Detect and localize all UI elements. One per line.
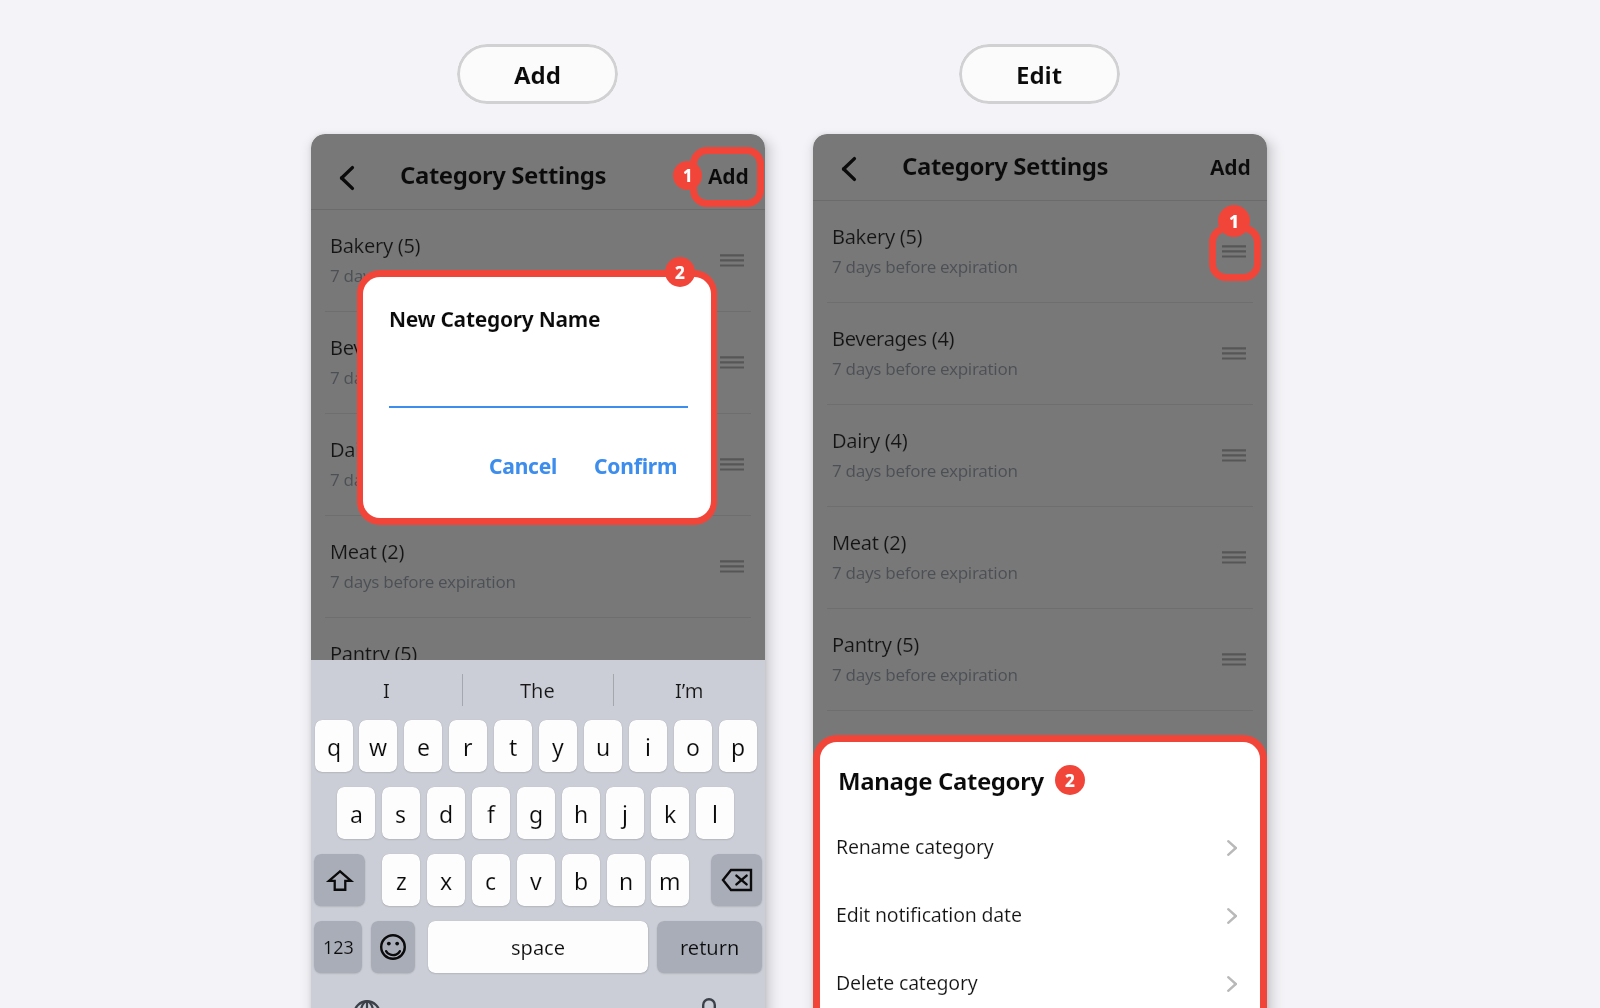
staticText: Cancel — [489, 452, 558, 481]
button[interactable]: k — [651, 787, 689, 839]
button[interactable]: Reorder Bakery (5) — [1210, 230, 1258, 274]
staticText: Bakery (5) — [832, 223, 923, 250]
button[interactable]: Reorder Beverages (4) — [708, 341, 756, 385]
button[interactable]: Edit notification date — [820, 888, 1260, 944]
staticText: p — [731, 731, 746, 762]
button[interactable]: Bakery (5) — [311, 210, 765, 312]
staticText: 7 days before expiration — [330, 264, 516, 287]
button[interactable]: Dictation — [702, 998, 716, 1008]
staticText: l — [712, 798, 718, 829]
button[interactable]: Pantry (5) — [311, 618, 765, 720]
staticText: u — [596, 731, 611, 762]
button[interactable]: b — [562, 854, 600, 906]
button[interactable]: Reorder Beverages (4) — [1210, 332, 1258, 376]
staticText: h — [574, 798, 589, 829]
button[interactable]: n — [607, 854, 645, 906]
button[interactable]: Cancel — [482, 446, 564, 486]
button[interactable]: t — [494, 720, 532, 772]
staticText: 7 days before expiration — [330, 468, 516, 491]
staticText: return — [680, 934, 740, 961]
button[interactable]: Emoji — [371, 921, 415, 973]
button[interactable]: Delete category — [820, 956, 1260, 1008]
button[interactable]: Meat (2) — [311, 516, 765, 618]
staticText: c — [485, 865, 497, 896]
button[interactable]: Beverages (4) — [813, 303, 1267, 405]
staticText: 7 days before expiration — [330, 366, 516, 389]
button[interactable]: u — [584, 720, 622, 772]
staticText: Category Settings — [400, 158, 607, 191]
button[interactable]: Bakery (5) — [813, 201, 1267, 303]
button[interactable]: Rename category — [820, 820, 1260, 876]
button[interactable]: Dairy (4) — [813, 405, 1267, 507]
button[interactable]: m — [651, 854, 689, 906]
button[interactable]: Add — [457, 44, 618, 104]
button[interactable]: I — [311, 668, 462, 712]
staticText: Pantry (5) — [330, 640, 417, 667]
button[interactable]: c — [472, 854, 510, 906]
button[interactable]: Reorder Dairy (4) — [708, 443, 756, 487]
staticText: The — [520, 677, 555, 704]
staticText: t — [509, 731, 518, 762]
button[interactable]: r — [449, 720, 487, 772]
button[interactable]: Edit — [959, 44, 1120, 104]
button[interactable]: Backspace — [711, 854, 762, 906]
button[interactable]: Reorder Pantry (5) — [708, 647, 756, 691]
staticText: a — [350, 798, 363, 829]
button[interactable]: Back — [828, 148, 870, 190]
button[interactable]: y — [539, 720, 577, 772]
staticText: 7 days before expiration — [832, 459, 1018, 482]
button[interactable]: Beverages (4) — [311, 312, 765, 414]
staticText: Edit notification date — [836, 901, 1022, 928]
button[interactable]: z — [382, 854, 420, 906]
button[interactable]: s — [382, 787, 420, 839]
button[interactable]: Change keyboard language — [353, 1000, 381, 1008]
button[interactable]: Dairy (4) — [311, 414, 765, 516]
button[interactable]: Add — [1204, 147, 1256, 187]
button[interactable]: g — [517, 787, 555, 839]
staticText: x — [440, 865, 453, 896]
button[interactable]: i — [629, 720, 667, 772]
staticText: I — [383, 677, 390, 704]
staticText: Dairy (4) — [330, 436, 406, 463]
button[interactable]: p — [719, 720, 757, 772]
button[interactable]: Reorder Pantry (5) — [1210, 638, 1258, 682]
button[interactable]: v — [517, 854, 555, 906]
button[interactable]: Reorder Meat (2) — [1210, 536, 1258, 580]
button[interactable]: Meat (2) — [813, 507, 1267, 609]
button[interactable]: Reorder Meat (2) — [708, 545, 756, 589]
button[interactable]: l — [696, 787, 734, 839]
button[interactable]: e — [404, 720, 442, 772]
button[interactable]: Shift — [314, 854, 365, 906]
button[interactable]: q — [315, 720, 353, 772]
button[interactable]: Reorder Bakery (5) — [708, 239, 756, 283]
button[interactable]: Back — [326, 157, 368, 199]
staticText: 2 — [1065, 769, 1075, 792]
button[interactable]: Add — [702, 156, 754, 196]
staticText: 1 — [683, 164, 693, 187]
button[interactable]: h — [562, 787, 600, 839]
button[interactable]: w — [359, 720, 397, 772]
staticText: 7 days before expiration — [330, 570, 516, 593]
button[interactable]: o — [674, 720, 712, 772]
button[interactable]: a — [337, 787, 375, 839]
button[interactable]: 123 — [314, 921, 362, 973]
staticText: New Category Name — [389, 305, 601, 334]
button[interactable]: j — [606, 787, 644, 839]
staticText: Meat (2) — [330, 538, 405, 565]
staticText: Add — [1210, 153, 1251, 182]
button[interactable]: d — [427, 787, 465, 839]
button[interactable]: f — [472, 787, 510, 839]
staticText: w — [369, 731, 388, 762]
staticText: I’m — [675, 677, 704, 704]
button[interactable]: x — [427, 854, 465, 906]
button[interactable]: I’m — [614, 668, 765, 712]
button[interactable]: Pantry (5) — [813, 609, 1267, 711]
staticText: 7 days before expiration — [832, 663, 1018, 686]
button[interactable]: space — [428, 921, 648, 973]
button[interactable]: Reorder Dairy (4) — [1210, 434, 1258, 478]
staticText: b — [574, 865, 589, 896]
button[interactable]: return — [657, 921, 762, 973]
staticText: s — [395, 798, 407, 829]
button[interactable]: Confirm — [591, 446, 681, 486]
button[interactable]: The — [462, 668, 613, 712]
